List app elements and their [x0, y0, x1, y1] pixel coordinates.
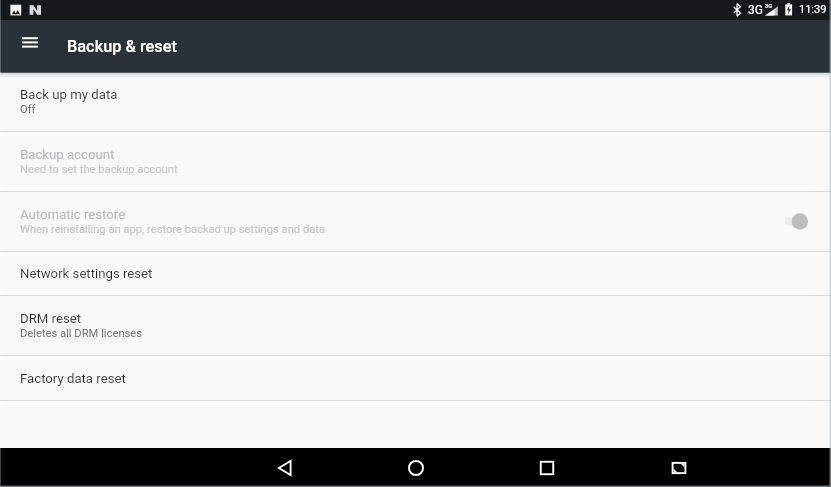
button[interactable]: Network settings reset [0, 252, 831, 295]
staticText: 11:39 [799, 3, 827, 16]
button[interactable]: Back [257, 448, 313, 487]
button[interactable]: Open navigation menu [7, 20, 53, 72]
staticText: 3G [748, 3, 763, 17]
button[interactable]: Automatic restore [0, 192, 831, 251]
staticText: Backup & reset [67, 37, 177, 56]
staticText: Back up my data [20, 87, 118, 102]
button[interactable]: Home [388, 448, 444, 487]
staticText: Off [20, 103, 36, 116]
button[interactable]: DRM reset [0, 296, 831, 355]
staticText: Network settings reset [20, 266, 153, 281]
staticText: 3G [765, 2, 773, 9]
staticText: DRM reset [20, 311, 82, 326]
staticText: Factory data reset [20, 371, 126, 386]
staticText: When reinstalling an app, restore backed… [20, 223, 326, 236]
staticText: Automatic restore [20, 207, 126, 222]
button[interactable]: Back up my data [0, 72, 831, 131]
button[interactable]: Screenshot [651, 448, 707, 487]
staticText: Need to set the backup account [20, 163, 178, 176]
button[interactable]: Factory data reset [0, 356, 831, 400]
button[interactable]: Backup account [0, 132, 831, 191]
staticText: Backup account [20, 147, 115, 162]
staticText: Deletes all DRM licenses [20, 327, 143, 340]
button[interactable]: Recent apps [519, 448, 575, 487]
